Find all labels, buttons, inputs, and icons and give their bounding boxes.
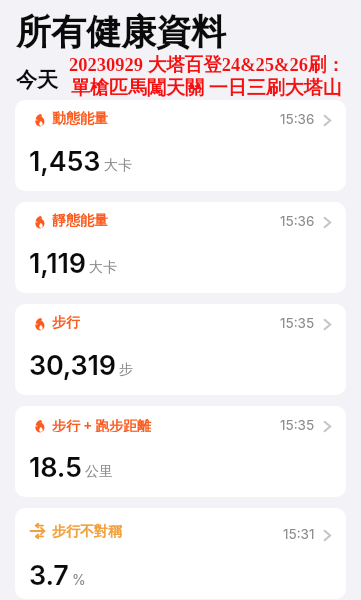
staticText: 15:35	[280, 315, 315, 331]
staticText: 1,453	[29, 145, 101, 178]
staticText: 今天	[16, 67, 58, 93]
staticText: 15:36	[280, 213, 315, 229]
staticText: 步行 + 跑步距離	[52, 416, 152, 432]
staticText: 靜態能量	[52, 212, 108, 228]
staticText: 步行不對稱	[52, 523, 122, 539]
staticText: 單槍匹馬闖天關 一日三刷大塔山	[71, 76, 342, 100]
staticText: 所有健康資料	[16, 10, 226, 54]
staticText: 15:36	[280, 111, 315, 127]
staticText: 18.5	[29, 451, 82, 484]
staticText: 3.7	[29, 559, 69, 592]
staticText: 20230929 大塔百登24&25&26刷：	[69, 53, 345, 76]
staticText: 15:31	[283, 526, 315, 542]
staticText: %	[72, 571, 86, 588]
staticText: 1,119	[29, 247, 86, 280]
staticText: 大卡	[89, 259, 117, 277]
staticText: 公里	[85, 463, 113, 481]
staticText: 15:35	[280, 417, 315, 433]
staticText: 步	[119, 361, 133, 379]
staticText: 30,319	[29, 349, 116, 382]
staticText: 大卡	[104, 157, 132, 175]
staticText: 步行	[52, 314, 80, 330]
staticText: 動態能量	[52, 110, 108, 126]
